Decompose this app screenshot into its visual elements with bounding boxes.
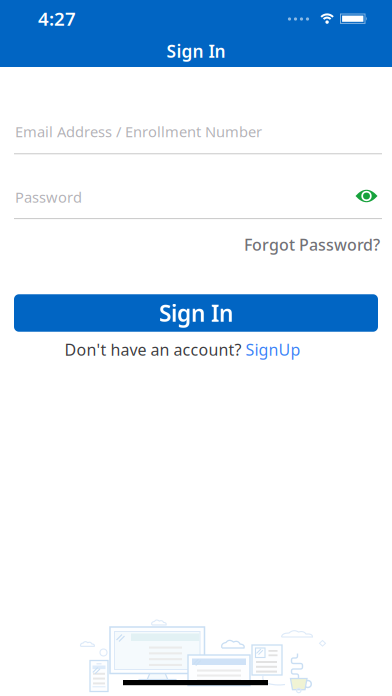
staticText: Password <box>15 187 82 207</box>
staticText: Email Address / Enrollment Number <box>15 122 262 141</box>
staticText: 4:27 <box>38 6 76 31</box>
staticText: Don't have an account? <box>64 339 241 360</box>
staticText: Sign In <box>166 39 225 62</box>
staticText: Forgot Password? <box>244 234 380 255</box>
staticText: SignUp <box>245 339 300 360</box>
button[interactable]: Show password <box>353 187 379 205</box>
button[interactable]: Sign In <box>14 294 378 332</box>
staticText: Sign In <box>159 298 233 328</box>
button[interactable]: SignUp <box>245 339 300 360</box>
button[interactable]: Forgot Password? <box>244 234 380 255</box>
